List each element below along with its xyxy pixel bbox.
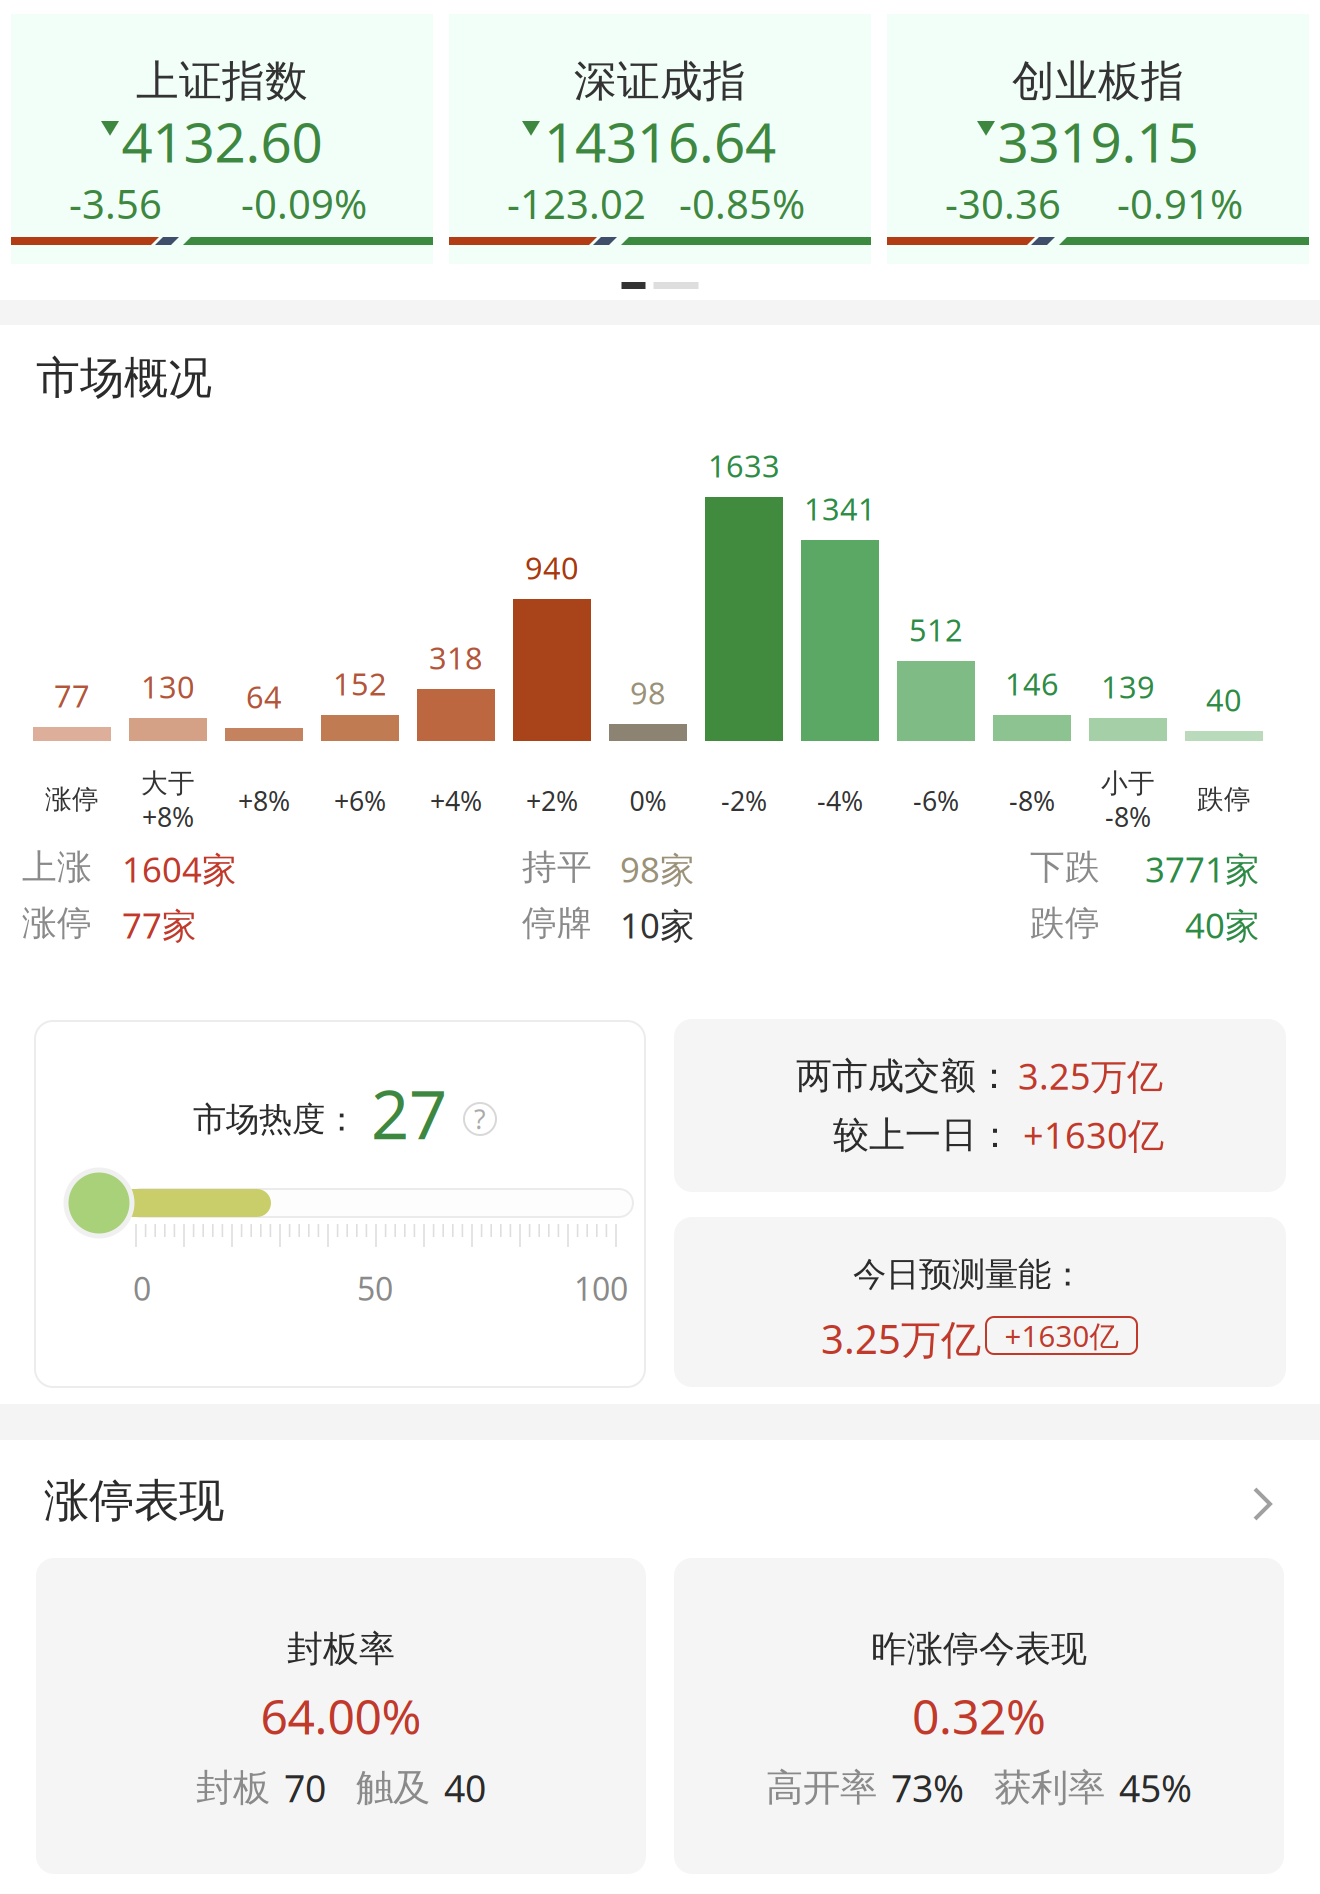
staticText: 40家 xyxy=(1185,902,1260,948)
staticText: 318 xyxy=(429,637,483,678)
staticText: 64 xyxy=(246,676,282,717)
staticText: 98 xyxy=(630,672,666,713)
staticText: 大于 xyxy=(141,767,195,800)
staticText: +6% xyxy=(334,783,386,818)
staticText: 27 xyxy=(371,1069,447,1157)
staticText: -0.91% xyxy=(1117,177,1243,230)
staticText: 3.25万亿 xyxy=(821,1312,981,1365)
staticText: 0 xyxy=(133,1267,151,1309)
staticText: 4132.60 xyxy=(121,105,322,178)
staticText: 3771家 xyxy=(1145,846,1260,892)
staticText: +8% xyxy=(142,799,194,834)
staticText: -8% xyxy=(1009,783,1055,818)
staticText: +8% xyxy=(238,783,290,818)
staticText: 77 xyxy=(54,675,90,716)
staticText: 跌停 xyxy=(1030,902,1100,945)
staticText: 1341 xyxy=(804,488,876,529)
button[interactable]: 深证成指 xyxy=(449,14,871,264)
staticText: 14316.64 xyxy=(544,105,776,178)
staticText: 高开率 xyxy=(766,1765,877,1811)
staticText: 市场概况 xyxy=(36,351,212,405)
staticText: 1604家 xyxy=(122,846,237,892)
staticText: 139 xyxy=(1101,666,1155,707)
staticText: -123.02 xyxy=(507,177,646,230)
staticText: 创业板指 xyxy=(1012,55,1184,107)
staticText: 小于 xyxy=(1101,767,1155,800)
staticText: 45% xyxy=(1119,1763,1192,1813)
staticText: +2% xyxy=(526,783,578,818)
staticText: -2% xyxy=(721,783,767,818)
staticText: 100 xyxy=(574,1267,628,1309)
staticText: 上证指数 xyxy=(136,55,308,107)
staticText: 130 xyxy=(141,666,195,707)
staticText: -6% xyxy=(913,783,959,818)
staticText: 持平 xyxy=(522,846,592,889)
staticText: 触及 xyxy=(356,1765,430,1811)
staticText: 昨涨停今表现 xyxy=(871,1627,1087,1671)
staticText: 1633 xyxy=(708,445,780,486)
staticText: 152 xyxy=(333,663,387,704)
button[interactable]: 创业板指 xyxy=(887,14,1309,264)
staticText: +1630亿 xyxy=(1023,1111,1164,1159)
staticText: 10家 xyxy=(620,902,695,948)
staticText: 0.32% xyxy=(912,1684,1046,1748)
staticText: 跌停 xyxy=(1197,783,1251,816)
staticText: 上涨 xyxy=(22,846,92,889)
button[interactable]: 上证指数 xyxy=(11,14,433,264)
staticText: 深证成指 xyxy=(574,55,746,107)
staticText: 940 xyxy=(525,547,579,588)
staticText: 市场热度： xyxy=(193,1099,358,1140)
staticText: 获利率 xyxy=(994,1765,1105,1811)
staticText: 50 xyxy=(357,1267,393,1309)
staticText: 70 xyxy=(284,1763,326,1813)
staticText: 3319.15 xyxy=(997,105,1198,178)
staticText: 64.00% xyxy=(260,1684,421,1748)
staticText: 停牌 xyxy=(522,902,592,945)
staticText: 3.25万亿 xyxy=(1018,1052,1163,1100)
staticText: 512 xyxy=(909,609,963,650)
staticText: -8% xyxy=(1105,799,1151,834)
staticText: 涨停 xyxy=(22,902,92,945)
staticText: 40 xyxy=(444,1763,486,1813)
staticText: 较上一日： xyxy=(833,1113,1013,1157)
staticText: -30.36 xyxy=(945,177,1061,230)
staticText: 77家 xyxy=(122,902,197,948)
staticText: 涨停表现 xyxy=(44,1473,224,1529)
staticText: 封板率 xyxy=(287,1627,395,1671)
staticText: 今日预测量能： xyxy=(853,1254,1084,1295)
button[interactable]: 涨停表现详情 xyxy=(1252,1486,1274,1522)
staticText: 0% xyxy=(629,783,666,818)
staticText: 封板 xyxy=(196,1765,270,1811)
staticText: 40 xyxy=(1206,679,1242,720)
staticText: 146 xyxy=(1005,663,1059,704)
staticText: -0.85% xyxy=(679,177,805,230)
staticText: 73% xyxy=(891,1763,964,1813)
staticText: +4% xyxy=(430,783,482,818)
staticText: 涨停 xyxy=(45,783,99,816)
staticText: 98家 xyxy=(620,846,695,892)
staticText: 两市成交额： xyxy=(796,1054,1012,1098)
staticText: +1630亿 xyxy=(1004,1316,1118,1355)
staticText: -4% xyxy=(817,783,863,818)
staticText: 下跌 xyxy=(1030,846,1100,889)
staticText: ? xyxy=(474,1101,486,1137)
staticText: -3.56 xyxy=(69,177,162,230)
staticText: -0.09% xyxy=(241,177,367,230)
